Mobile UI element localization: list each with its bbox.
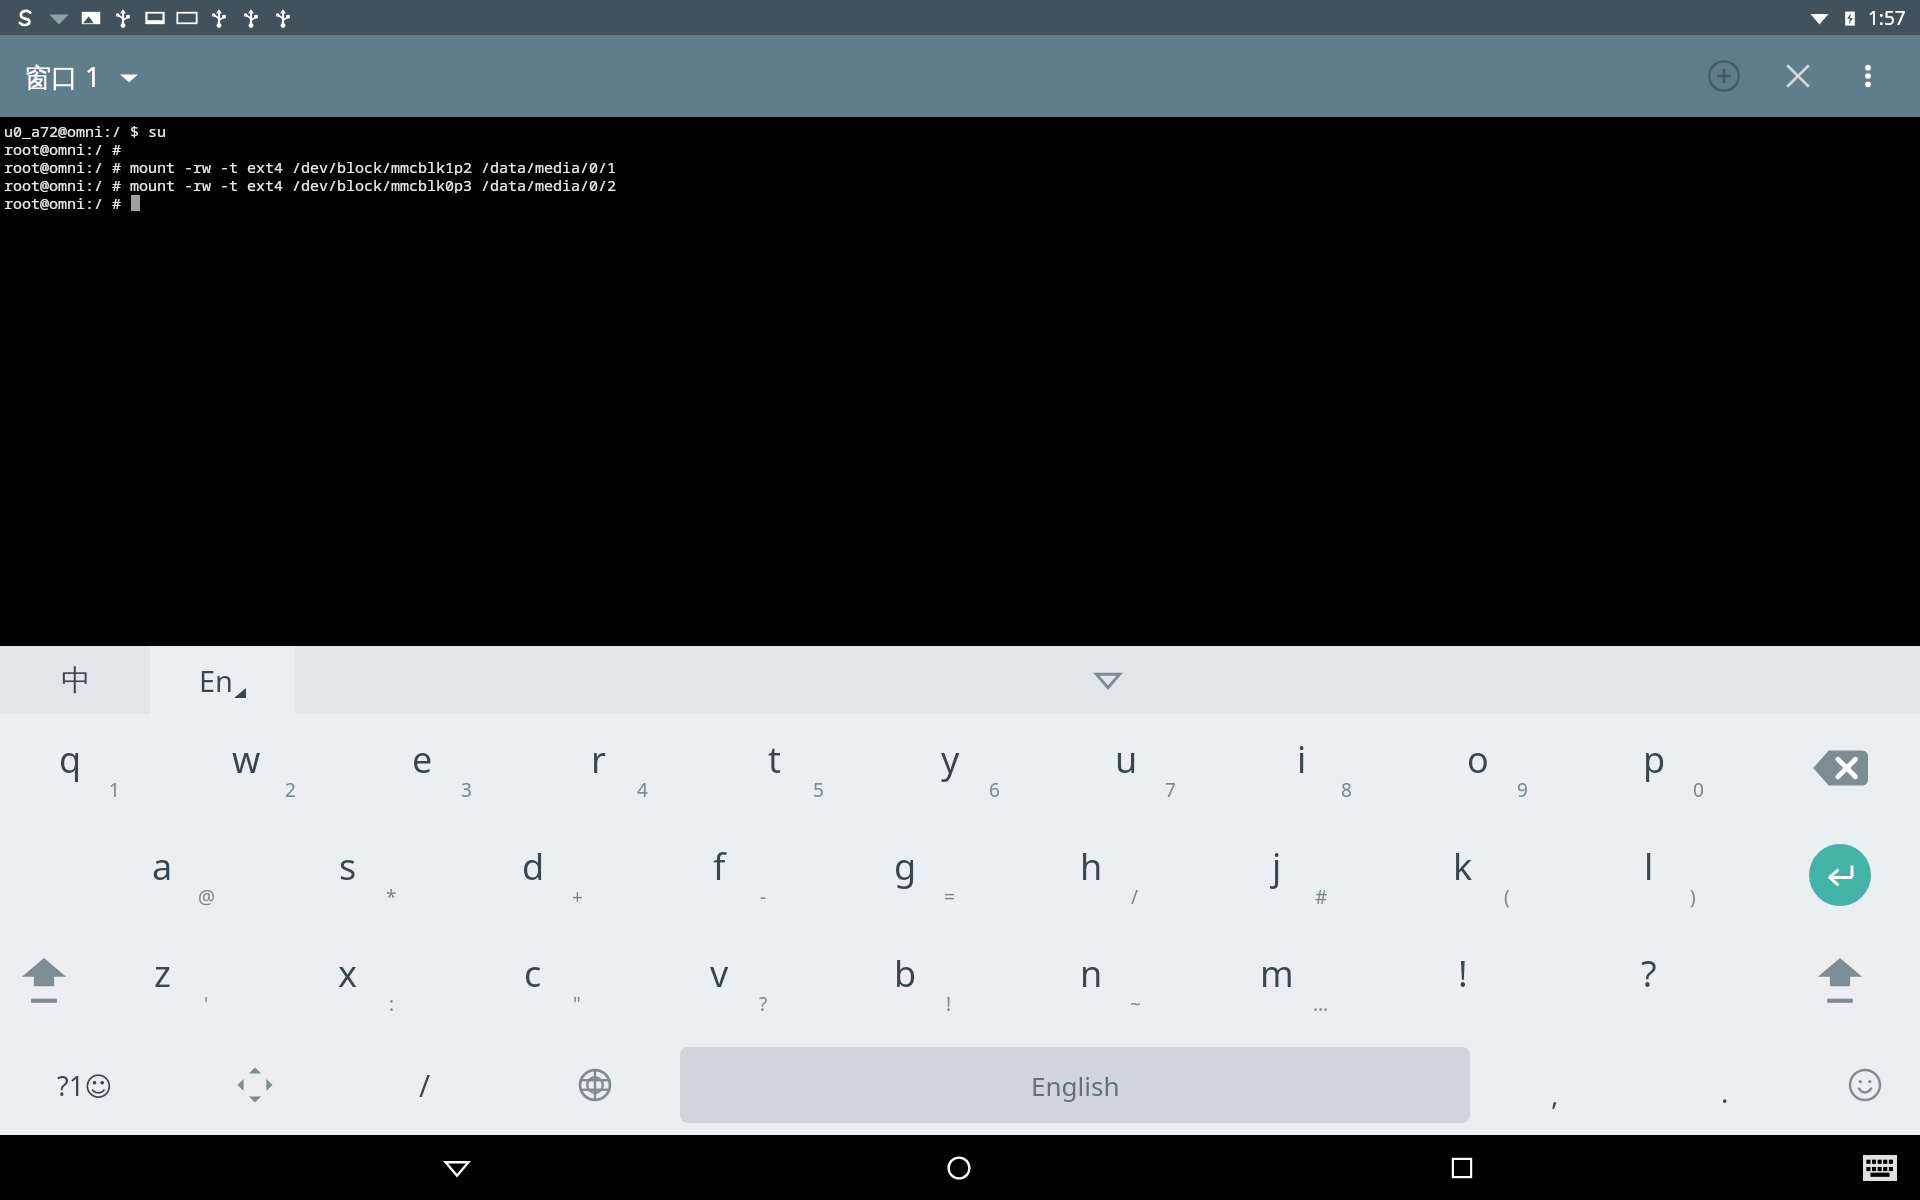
staticText: @	[198, 884, 216, 910]
button[interactable]: w	[176, 714, 352, 821]
button[interactable]: 中	[0, 646, 150, 714]
staticText: "	[573, 991, 581, 1017]
button[interactable]: Emoji	[1810, 1035, 1920, 1135]
button[interactable]: m	[1202, 928, 1388, 1035]
staticText: /	[419, 1065, 431, 1106]
staticText: +	[572, 884, 583, 910]
button[interactable]: u	[1056, 714, 1232, 821]
staticText: a	[152, 842, 173, 891]
staticText: ,	[1551, 1075, 1559, 1113]
staticText: (	[1504, 884, 1510, 910]
button[interactable]: Back	[412, 1135, 502, 1200]
button[interactable]: o	[1408, 714, 1584, 821]
button[interactable]: j	[1202, 821, 1388, 928]
button[interactable]: r	[528, 714, 704, 821]
staticText: 1:57	[1868, 5, 1906, 31]
staticText: f	[713, 842, 726, 891]
staticText: 3	[461, 777, 472, 803]
button[interactable]: 窗口 1	[24, 58, 139, 95]
button[interactable]: Recents	[1417, 1135, 1507, 1200]
button[interactable]: Backspace	[1760, 714, 1920, 821]
button[interactable]: g	[830, 821, 1016, 928]
staticText: n	[1080, 949, 1103, 998]
button[interactable]: x	[273, 928, 458, 1035]
staticText: k	[1453, 842, 1473, 891]
button[interactable]: v	[644, 928, 830, 1035]
staticText: 4	[637, 777, 648, 803]
button[interactable]: i	[1232, 714, 1408, 821]
button[interactable]: En	[150, 646, 295, 714]
button[interactable]: ?	[1574, 928, 1760, 1035]
button[interactable]: f	[644, 821, 830, 928]
button[interactable]: e	[352, 714, 528, 821]
staticText: .	[1721, 1073, 1729, 1111]
button[interactable]: b	[830, 928, 1016, 1035]
button[interactable]: Cursor move	[170, 1035, 340, 1135]
button[interactable]: Show keyboard	[1840, 1135, 1920, 1200]
button[interactable]: More options	[1838, 46, 1898, 106]
staticText: 6	[989, 777, 1000, 803]
button[interactable]: q	[0, 714, 176, 821]
button[interactable]: z	[88, 928, 273, 1035]
staticText: d	[522, 842, 545, 891]
staticText: u0_a72@omni:/ $ su	[4, 121, 167, 139]
button[interactable]: Shift	[0, 928, 88, 1035]
staticText: *	[386, 884, 397, 910]
staticText: 中	[61, 662, 90, 699]
staticText: =	[944, 884, 955, 910]
button[interactable]: p	[1584, 714, 1760, 821]
staticText: root@omni:/ #	[4, 139, 122, 157]
staticText: s	[339, 842, 357, 891]
staticText: g	[894, 842, 917, 891]
button[interactable]: ?1☺	[0, 1035, 170, 1135]
staticText: :	[389, 991, 395, 1017]
staticText: r	[591, 735, 606, 784]
staticText: -	[760, 884, 767, 910]
button[interactable]: s	[273, 821, 458, 928]
staticText: 1	[109, 777, 120, 803]
staticText: root@omni:/ # mount -rw -t ext4 /dev/blo…	[4, 175, 617, 193]
staticText: root@omni:/ #	[4, 193, 131, 213]
staticText: 7	[1165, 777, 1176, 803]
staticText: e	[412, 735, 433, 784]
staticText: !	[1458, 949, 1468, 998]
staticText: m	[1260, 949, 1294, 998]
button[interactable]: Close	[1768, 46, 1828, 106]
button[interactable]: h	[1016, 821, 1202, 928]
staticText: c	[524, 949, 542, 998]
staticText: /	[1131, 884, 1139, 910]
button[interactable]: d	[458, 821, 644, 928]
button[interactable]: Home	[914, 1135, 1004, 1200]
staticText: En	[199, 661, 234, 700]
button[interactable]: t	[704, 714, 880, 821]
button[interactable]: a	[88, 821, 273, 928]
staticText: w	[232, 735, 261, 784]
staticText: !	[946, 991, 952, 1017]
button[interactable]: c	[458, 928, 644, 1035]
button[interactable]: Shift	[1760, 928, 1920, 1035]
button[interactable]: n	[1016, 928, 1202, 1035]
staticText: j	[1272, 842, 1282, 891]
button[interactable]: k	[1388, 821, 1574, 928]
staticText: u	[1115, 735, 1138, 784]
button[interactable]: .	[1640, 1035, 1810, 1135]
staticText: h	[1080, 842, 1103, 891]
staticText: 0	[1693, 777, 1704, 803]
staticText: ~	[1130, 991, 1141, 1017]
button[interactable]: y	[880, 714, 1056, 821]
button[interactable]: English	[680, 1047, 1470, 1123]
button[interactable]: /	[340, 1035, 510, 1135]
staticText: l	[1644, 842, 1654, 891]
button[interactable]: New window	[1694, 46, 1754, 106]
button[interactable]: !	[1388, 928, 1574, 1035]
button[interactable]: l	[1574, 821, 1760, 928]
staticText: y	[941, 735, 960, 784]
button[interactable]: Switch language	[510, 1035, 680, 1135]
staticText: ?	[1641, 949, 1657, 998]
staticText: ?	[759, 991, 768, 1017]
staticText: p	[1643, 735, 1666, 784]
staticText: i	[1297, 735, 1307, 784]
button[interactable]: Enter	[1760, 821, 1920, 928]
button[interactable]: ,	[1470, 1035, 1640, 1135]
button[interactable]: Hide keyboard	[1073, 646, 1143, 714]
